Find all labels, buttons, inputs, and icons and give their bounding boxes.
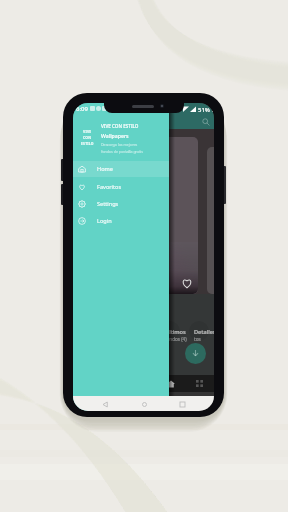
button[interactable]: Favoritos (73, 179, 169, 195)
staticText: 6:09 (76, 105, 88, 112)
button[interactable]: Download wallpaper (185, 343, 206, 364)
button[interactable]: Latest tab (157, 375, 185, 392)
staticText: ESTILO (81, 141, 94, 146)
staticText: Home (97, 165, 113, 173)
button[interactable]: Favorite (181, 277, 193, 289)
button[interactable]: Recent apps (176, 398, 188, 410)
staticText: Descarga los mejores (101, 142, 138, 147)
button[interactable]: Categories tab (185, 375, 213, 392)
button[interactable]: Home (138, 398, 150, 410)
button[interactable]: Search (200, 116, 211, 127)
staticText: Detalles (194, 328, 214, 336)
staticText: 51% (198, 106, 210, 112)
staticText: VIVE CON ESTILO (101, 123, 139, 129)
button[interactable]: Back (99, 398, 111, 410)
staticText: Favoritos (97, 183, 122, 191)
staticText: VIVE (83, 129, 92, 134)
staticText: tos (194, 336, 201, 342)
staticText: fondos de pantalla gratis (101, 149, 143, 154)
button[interactable]: Login (73, 213, 169, 229)
staticText: Últimos (165, 328, 186, 336)
button[interactable]: Settings (73, 196, 169, 212)
staticText: Settings (97, 200, 119, 208)
staticText: Login (97, 217, 112, 225)
staticText: CON (83, 135, 92, 140)
staticText: Wallpapers (101, 132, 129, 139)
button[interactable]: Home (73, 161, 169, 177)
staticText: fondos (4) (165, 336, 187, 342)
